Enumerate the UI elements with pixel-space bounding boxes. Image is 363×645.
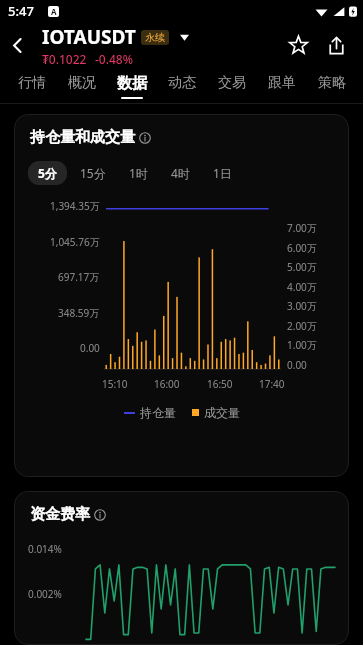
staticText: 行情: [18, 74, 46, 92]
staticText: ₮0.1022: [42, 51, 87, 67]
button[interactable]: 行情: [6, 68, 57, 104]
staticText: 概况: [68, 74, 96, 92]
staticText: 4时: [171, 165, 190, 181]
staticText: 资金费率: [30, 505, 90, 524]
staticText: 跟单: [268, 74, 296, 92]
button[interactable]: 数据: [107, 68, 157, 104]
staticText: -0.48%: [95, 51, 133, 67]
staticText: 持仓量和成交量: [30, 128, 135, 147]
staticText: 15:10: [102, 377, 128, 391]
staticText: 5分: [38, 165, 57, 181]
staticText: 697.17万: [58, 270, 100, 284]
staticText: 6.00万: [287, 241, 317, 255]
staticText: 交易: [218, 74, 246, 92]
button[interactable]: 动态: [157, 68, 207, 104]
button[interactable]: 15分: [70, 161, 116, 185]
staticText: 16:50: [207, 377, 233, 391]
staticText: 1,045.76万: [50, 235, 100, 249]
button[interactable]: 1日: [203, 161, 242, 185]
button[interactable]: 跟单: [257, 68, 307, 104]
staticText: 3.00万: [287, 299, 317, 313]
staticText: 动态: [168, 74, 196, 92]
button[interactable]: 5分: [28, 161, 67, 185]
button[interactable]: 交易: [207, 68, 257, 104]
button[interactable]: Favorite: [281, 28, 315, 62]
staticText: 1.00万: [287, 338, 317, 352]
staticText: 0.00: [80, 341, 100, 355]
staticText: 数据: [117, 74, 147, 93]
button[interactable]: Back: [0, 22, 34, 68]
staticText: 0.014%: [28, 542, 62, 556]
staticText: 1,394.35万: [50, 199, 100, 213]
staticText: 4.00万: [287, 280, 317, 294]
button[interactable]: 1时: [119, 161, 158, 185]
staticText: 持仓量: [140, 405, 176, 420]
button[interactable]: More markets: [175, 28, 193, 46]
staticText: 2.00万: [287, 319, 317, 333]
staticText: 348.59万: [58, 306, 100, 320]
staticText: 5.00万: [287, 260, 317, 274]
staticText: 7.00万: [287, 221, 317, 235]
staticText: 17:40: [259, 377, 285, 391]
staticText: 0.00: [287, 358, 307, 372]
staticText: A: [51, 6, 57, 17]
staticText: 1日: [213, 165, 232, 181]
button[interactable]: Share: [319, 28, 353, 62]
staticText: 成交量: [204, 405, 240, 420]
staticText: IOTAUSDT: [42, 24, 136, 50]
staticText: 1时: [129, 165, 148, 181]
staticText: 永续: [145, 31, 165, 44]
staticText: 15分: [80, 165, 106, 181]
staticText: 0.002%: [28, 587, 62, 601]
staticText: 5:47: [8, 2, 34, 20]
button[interactable]: 策略: [307, 68, 357, 104]
button[interactable]: 概况: [57, 68, 107, 104]
staticText: 16:00: [154, 377, 180, 391]
staticText: 策略: [318, 74, 346, 92]
button[interactable]: 4时: [161, 161, 200, 185]
